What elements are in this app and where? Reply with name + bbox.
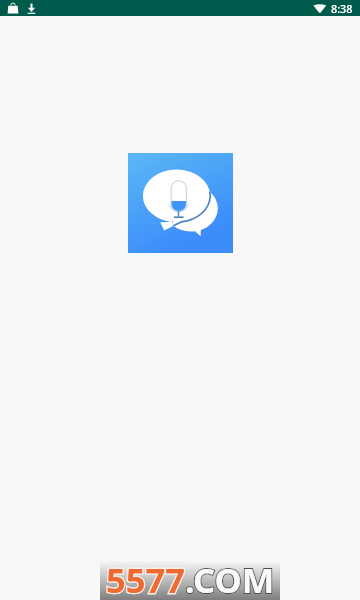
staticText: 8:38	[331, 1, 353, 16]
staticText: .COM	[185, 556, 275, 596]
staticText: .COM	[185, 556, 275, 596]
staticText: 5577	[106, 556, 185, 596]
staticText: 5577	[106, 556, 185, 596]
